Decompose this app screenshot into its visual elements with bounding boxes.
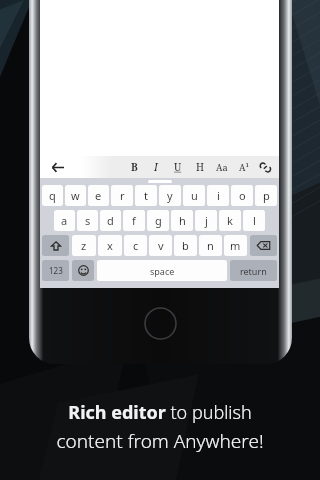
other: Home [144, 307, 177, 340]
button[interactable]: Bold [124, 156, 144, 178]
button[interactable]: Emoji [72, 260, 94, 281]
button[interactable]: 123 [42, 260, 69, 281]
staticText: e [95, 188, 102, 203]
staticText: t [144, 188, 148, 203]
button[interactable]: return [230, 260, 277, 281]
staticText: m [230, 238, 241, 253]
staticText: x [107, 238, 113, 253]
button[interactable]: p [255, 185, 277, 206]
staticText: c [133, 238, 139, 253]
staticText: Rich editor to publish [68, 400, 252, 425]
button[interactable]: n [199, 235, 222, 256]
staticText: v [158, 238, 164, 253]
button[interactable]: q [42, 185, 63, 206]
staticText: p [263, 188, 270, 203]
button[interactable]: w [65, 185, 86, 206]
staticText: A¹ [239, 161, 250, 173]
staticText: I [154, 160, 158, 174]
button[interactable]: a [54, 210, 75, 231]
staticText: b [182, 238, 189, 253]
staticText: j [205, 213, 208, 228]
staticText: g [155, 213, 162, 228]
staticText: d [107, 213, 114, 228]
staticText: 123 [49, 265, 63, 276]
staticText: space [150, 265, 175, 277]
button[interactable]: c [124, 235, 147, 256]
staticText: B [131, 160, 138, 174]
button[interactable]: v [149, 235, 172, 256]
button[interactable]: s [77, 210, 98, 231]
staticText: i [217, 188, 220, 203]
button[interactable]: u [183, 185, 205, 206]
button[interactable]: x [98, 235, 122, 256]
button[interactable]: d [100, 210, 121, 231]
button[interactable]: t [135, 185, 157, 206]
staticText: l [253, 213, 256, 228]
button[interactable]: Insert link [255, 156, 275, 178]
button[interactable]: Shift [42, 235, 69, 256]
button[interactable]: Superscript [234, 156, 254, 178]
button[interactable]: j [195, 210, 217, 231]
staticText: h [179, 213, 186, 228]
button[interactable]: m [224, 235, 247, 256]
staticText: u [191, 188, 198, 203]
staticText: o [239, 188, 246, 203]
button[interactable]: o [231, 185, 253, 206]
staticText: Aa [216, 161, 228, 173]
staticText: q [49, 188, 56, 203]
button[interactable]: i [207, 185, 229, 206]
staticText: H [196, 160, 204, 174]
button[interactable]: g [147, 210, 169, 231]
button[interactable]: Underline [168, 156, 188, 178]
staticText: s [85, 213, 91, 228]
button[interactable]: r [111, 185, 133, 206]
button[interactable]: e [88, 185, 109, 206]
button[interactable]: h [171, 210, 193, 231]
button[interactable]: Heading [190, 156, 210, 178]
staticText: f [132, 213, 136, 228]
staticText: U [174, 160, 182, 174]
button[interactable]: Text size [212, 156, 232, 178]
button[interactable]: l [243, 210, 265, 231]
button[interactable]: y [159, 185, 181, 206]
staticText: z [81, 238, 87, 253]
button[interactable]: k [219, 210, 241, 231]
staticText: a [61, 213, 68, 228]
staticText: y [167, 188, 173, 203]
staticText: content from Anywhere! [56, 428, 264, 454]
staticText: k [227, 213, 233, 228]
button[interactable]: b [174, 235, 197, 256]
button[interactable]: Back [44, 156, 70, 178]
button[interactable]: Italic [146, 156, 166, 178]
button[interactable]: f [123, 210, 145, 231]
button[interactable]: z [72, 235, 96, 256]
staticText: return [240, 265, 267, 277]
staticText: r [120, 188, 125, 203]
staticText: n [207, 238, 214, 253]
button[interactable]: Backspace [250, 235, 277, 256]
staticText: w [71, 188, 80, 203]
button[interactable]: space [97, 260, 227, 281]
